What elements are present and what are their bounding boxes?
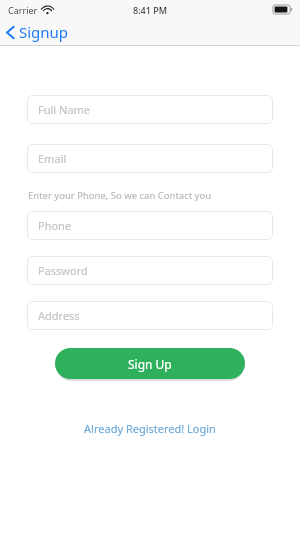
button[interactable]: Password bbox=[27, 256, 273, 285]
button[interactable]: Back bbox=[0, 20, 79, 44]
staticText: Already Registered! Login bbox=[84, 421, 216, 436]
other: Battery bbox=[273, 5, 292, 14]
staticText: Address bbox=[38, 308, 80, 323]
button[interactable]: Email bbox=[27, 144, 273, 173]
staticText: Carrier bbox=[8, 4, 38, 16]
staticText: Enter your Phone, So we can Contact you bbox=[28, 189, 212, 202]
other: Back bbox=[6, 25, 15, 40]
staticText: Signup bbox=[19, 22, 69, 42]
staticText: Sign Up bbox=[128, 356, 172, 372]
button[interactable]: Phone bbox=[27, 211, 273, 240]
staticText: 8:41 PM bbox=[133, 4, 167, 16]
button[interactable]: Sign Up bbox=[55, 348, 245, 379]
staticText: Full Name bbox=[38, 102, 91, 117]
other: Wi-Fi bbox=[42, 6, 53, 14]
button[interactable]: Already Registered! Login bbox=[72, 417, 228, 440]
staticText: Password bbox=[38, 263, 88, 278]
button[interactable]: Address bbox=[27, 301, 273, 330]
staticText: Phone bbox=[38, 218, 72, 233]
button[interactable]: Full Name bbox=[27, 95, 273, 124]
staticText: Email bbox=[38, 151, 67, 166]
